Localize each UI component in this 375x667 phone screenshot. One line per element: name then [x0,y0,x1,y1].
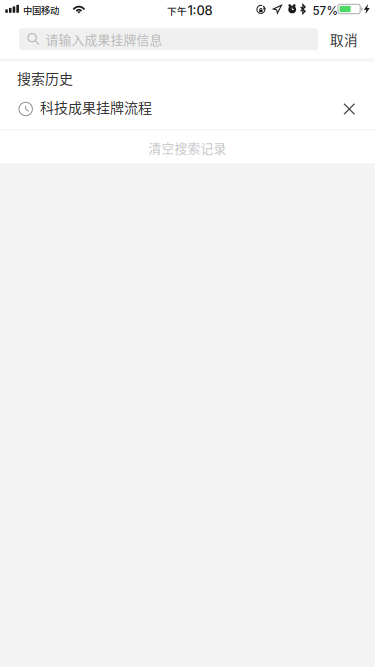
staticText: 取消 [330,29,358,49]
button[interactable]: 科技成果挂牌流程 [0,94,375,123]
staticText: 请输入成果挂牌信息 [45,30,162,48]
staticText: 科技成果挂牌流程 [40,97,152,117]
staticText: 1:08 [187,3,212,18]
staticText: 57% [312,4,338,18]
button[interactable]: 请输入成果挂牌信息 [19,28,318,50]
staticText: 清空搜索记录 [148,138,226,157]
button[interactable]: 清空搜索记录 [0,130,375,163]
staticText: 下午 [167,4,187,18]
staticText: 中国移动 [23,3,59,17]
staticText: 搜索历史 [17,68,73,88]
button[interactable]: 取消 [321,24,367,54]
